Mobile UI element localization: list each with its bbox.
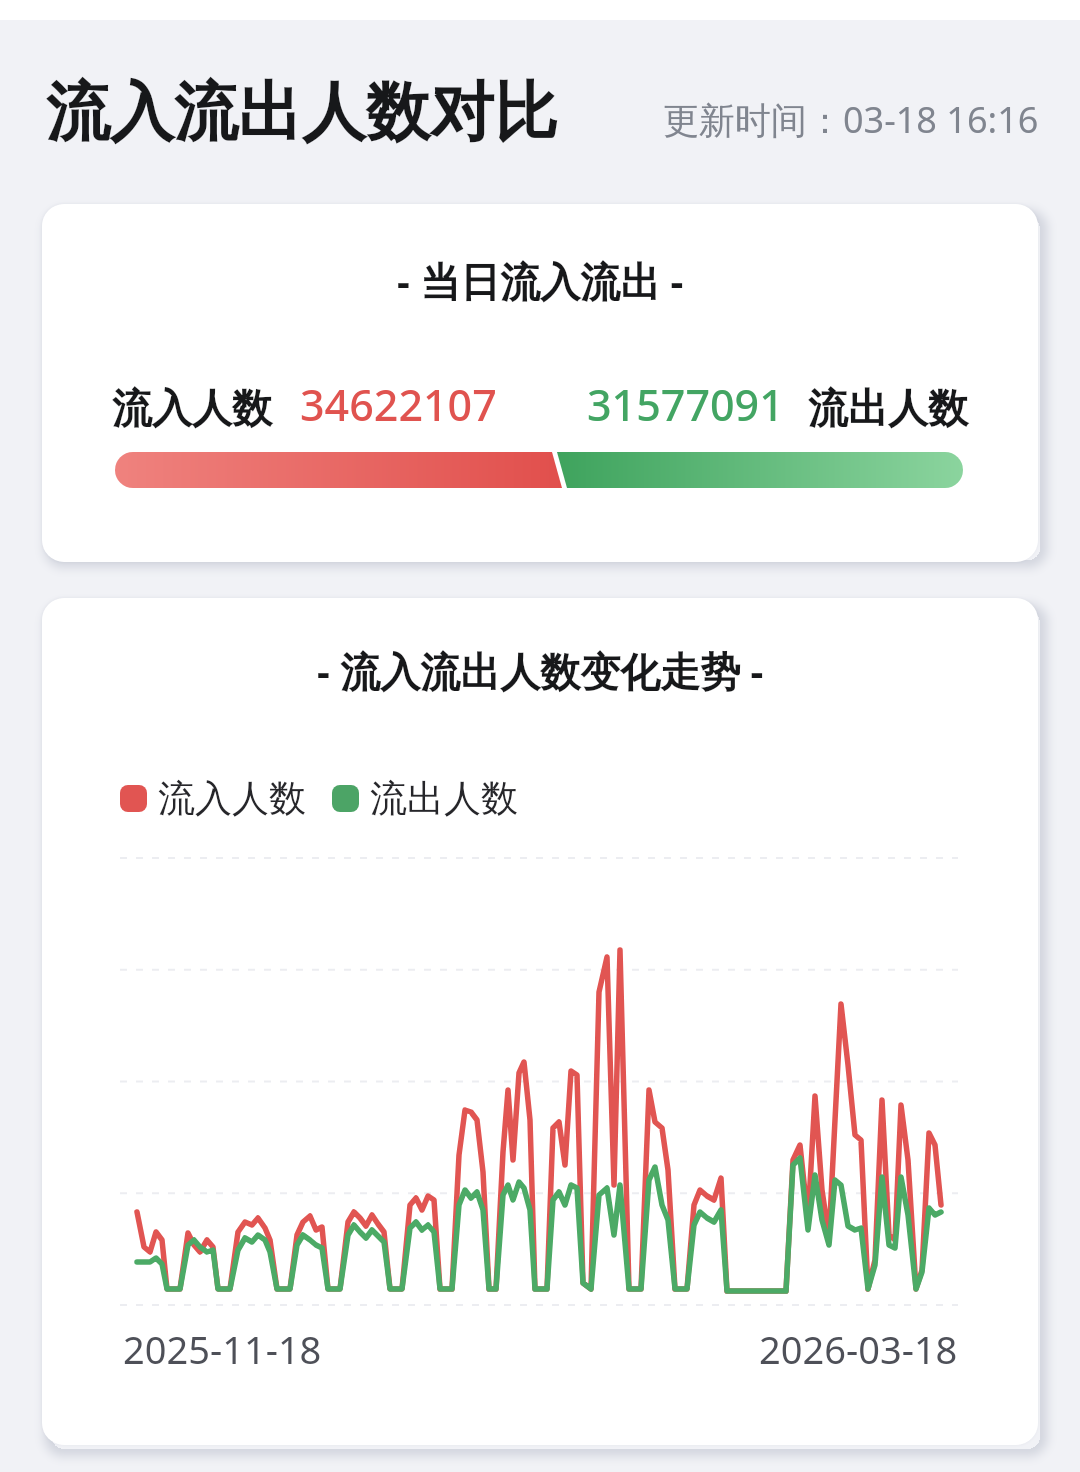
staticText: 更新时间：03-18 16:16 xyxy=(663,95,1039,144)
staticText: 31577091 xyxy=(587,375,784,434)
staticText: 流入人数 xyxy=(158,775,306,822)
staticText: 流入流出人数对比 xyxy=(46,72,558,153)
staticText: 流入人数 xyxy=(112,383,272,433)
staticText: 流出人数 xyxy=(370,775,518,822)
staticText: - 当日流入流出 - xyxy=(397,253,684,308)
staticText: 34622107 xyxy=(300,375,497,434)
button[interactable]: - 流入流出人数变化走势 - xyxy=(42,598,1038,1445)
staticText: - 流入流出人数变化走势 - xyxy=(317,643,764,698)
staticText: 2026-03-18 xyxy=(759,1323,958,1375)
staticText: 流出人数 xyxy=(808,383,968,433)
button[interactable]: - 当日流入流出 - xyxy=(42,204,1038,562)
staticText: 2025-11-18 xyxy=(123,1323,322,1375)
